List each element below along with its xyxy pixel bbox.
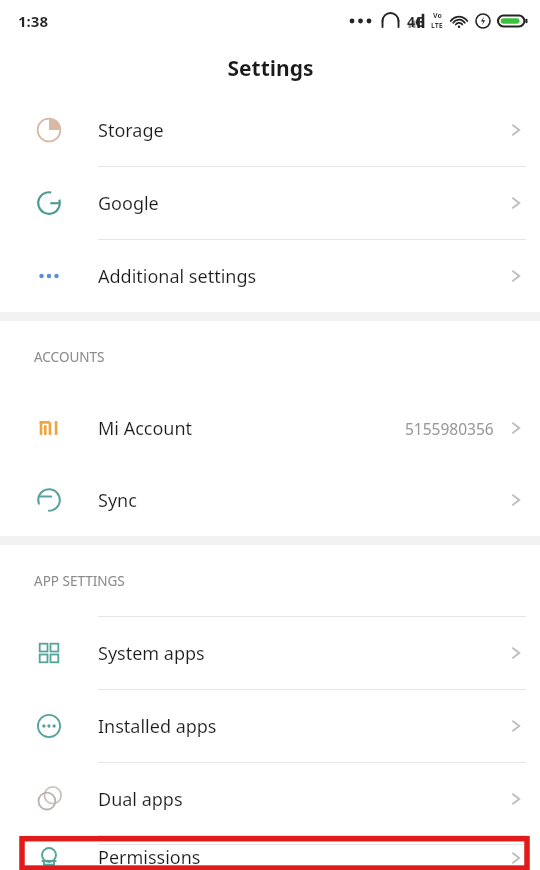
staticText: Google (98, 191, 159, 216)
staticText: Mi Account (98, 416, 193, 441)
staticText: APP SETTINGS (34, 572, 125, 590)
button[interactable]: System apps (0, 617, 540, 690)
button[interactable]: Installed apps (0, 690, 540, 763)
other: Permissions (34, 845, 64, 870)
staticText: LTE (431, 21, 443, 31)
other: Additional settings (34, 261, 64, 291)
other: System apps (34, 638, 64, 668)
other: Dual apps (34, 784, 64, 814)
staticText: System apps (98, 641, 205, 666)
button[interactable]: Sync (0, 464, 540, 536)
staticText: 4G (407, 12, 426, 31)
staticText: Sync (98, 488, 137, 513)
other: Google (34, 188, 64, 218)
other: Sync (34, 485, 64, 515)
staticText: Settings (227, 54, 314, 83)
other: Mi Account (34, 413, 64, 443)
button[interactable]: Google (0, 167, 540, 240)
button[interactable]: Mi Account (0, 392, 540, 464)
staticText: Installed apps (98, 714, 217, 739)
staticText: Dual apps (98, 787, 183, 812)
staticText: Vo (433, 11, 442, 21)
button[interactable]: Additional settings (0, 240, 540, 312)
button[interactable]: Permissions (0, 836, 540, 870)
staticText: Permissions (98, 845, 201, 870)
staticText: ACCOUNTS (34, 348, 105, 366)
button[interactable]: Dual apps (0, 763, 540, 836)
staticText: Additional settings (98, 264, 257, 289)
staticText: Storage (98, 118, 164, 143)
other: Installed apps (34, 711, 64, 741)
button[interactable]: Storage (0, 94, 540, 167)
other: Storage (34, 115, 64, 145)
staticText: 5155980356 (405, 418, 494, 439)
staticText: 1:38 (18, 11, 48, 31)
